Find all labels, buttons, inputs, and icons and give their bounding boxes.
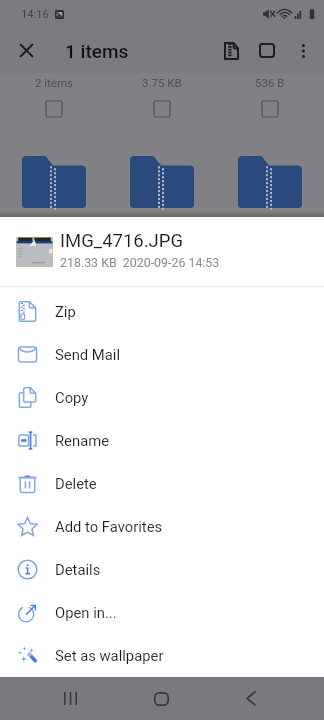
staticText: Copy — [55, 389, 89, 406]
staticText: Zip — [55, 303, 76, 320]
staticText: 14:16 — [21, 8, 49, 21]
button[interactable]: Recents — [48, 677, 92, 720]
staticText: Rename — [55, 432, 110, 449]
staticText: 3.75 KB — [142, 76, 182, 89]
button[interactable]: More options — [287, 28, 319, 73]
button[interactable]: Details — [0, 548, 324, 591]
button[interactable]: Select all — [249, 28, 284, 73]
button[interactable]: Copy — [0, 376, 324, 419]
button[interactable]: Zip — [0, 290, 324, 333]
staticText: IMG_4716.JPG — [60, 230, 184, 252]
staticText: Open in... — [55, 604, 117, 621]
button[interactable]: Close — [8, 28, 44, 73]
staticText: Set as wallpaper — [55, 647, 164, 664]
button[interactable]: Add to Favorites — [0, 505, 324, 548]
button[interactable]: Compress to zip — [213, 28, 249, 73]
button[interactable]: Home — [139, 677, 183, 720]
button[interactable]: Set as wallpaper — [0, 634, 324, 677]
button[interactable]: 3.75 KB — [108, 73, 216, 208]
button[interactable]: Delete — [0, 462, 324, 505]
staticText: 2 items — [35, 76, 73, 89]
staticText: Send Mail — [55, 346, 120, 363]
button[interactable]: Open in... — [0, 591, 324, 634]
button[interactable]: IMG_4716.JPG — [0, 217, 324, 286]
button[interactable]: 2 items — [0, 73, 108, 208]
button[interactable]: Back — [229, 677, 273, 720]
button[interactable]: Send Mail — [0, 333, 324, 376]
button[interactable]: 536 B — [216, 73, 324, 208]
staticText: Delete — [55, 475, 97, 492]
staticText: Details — [55, 561, 101, 578]
staticText: Add to Favorites — [55, 518, 163, 535]
button[interactable]: Rename — [0, 419, 324, 462]
staticText: 536 B — [255, 76, 285, 89]
staticText: 218.33 KB 2020-09-26 14:53 — [60, 255, 220, 270]
staticText: 1 items — [65, 40, 129, 62]
